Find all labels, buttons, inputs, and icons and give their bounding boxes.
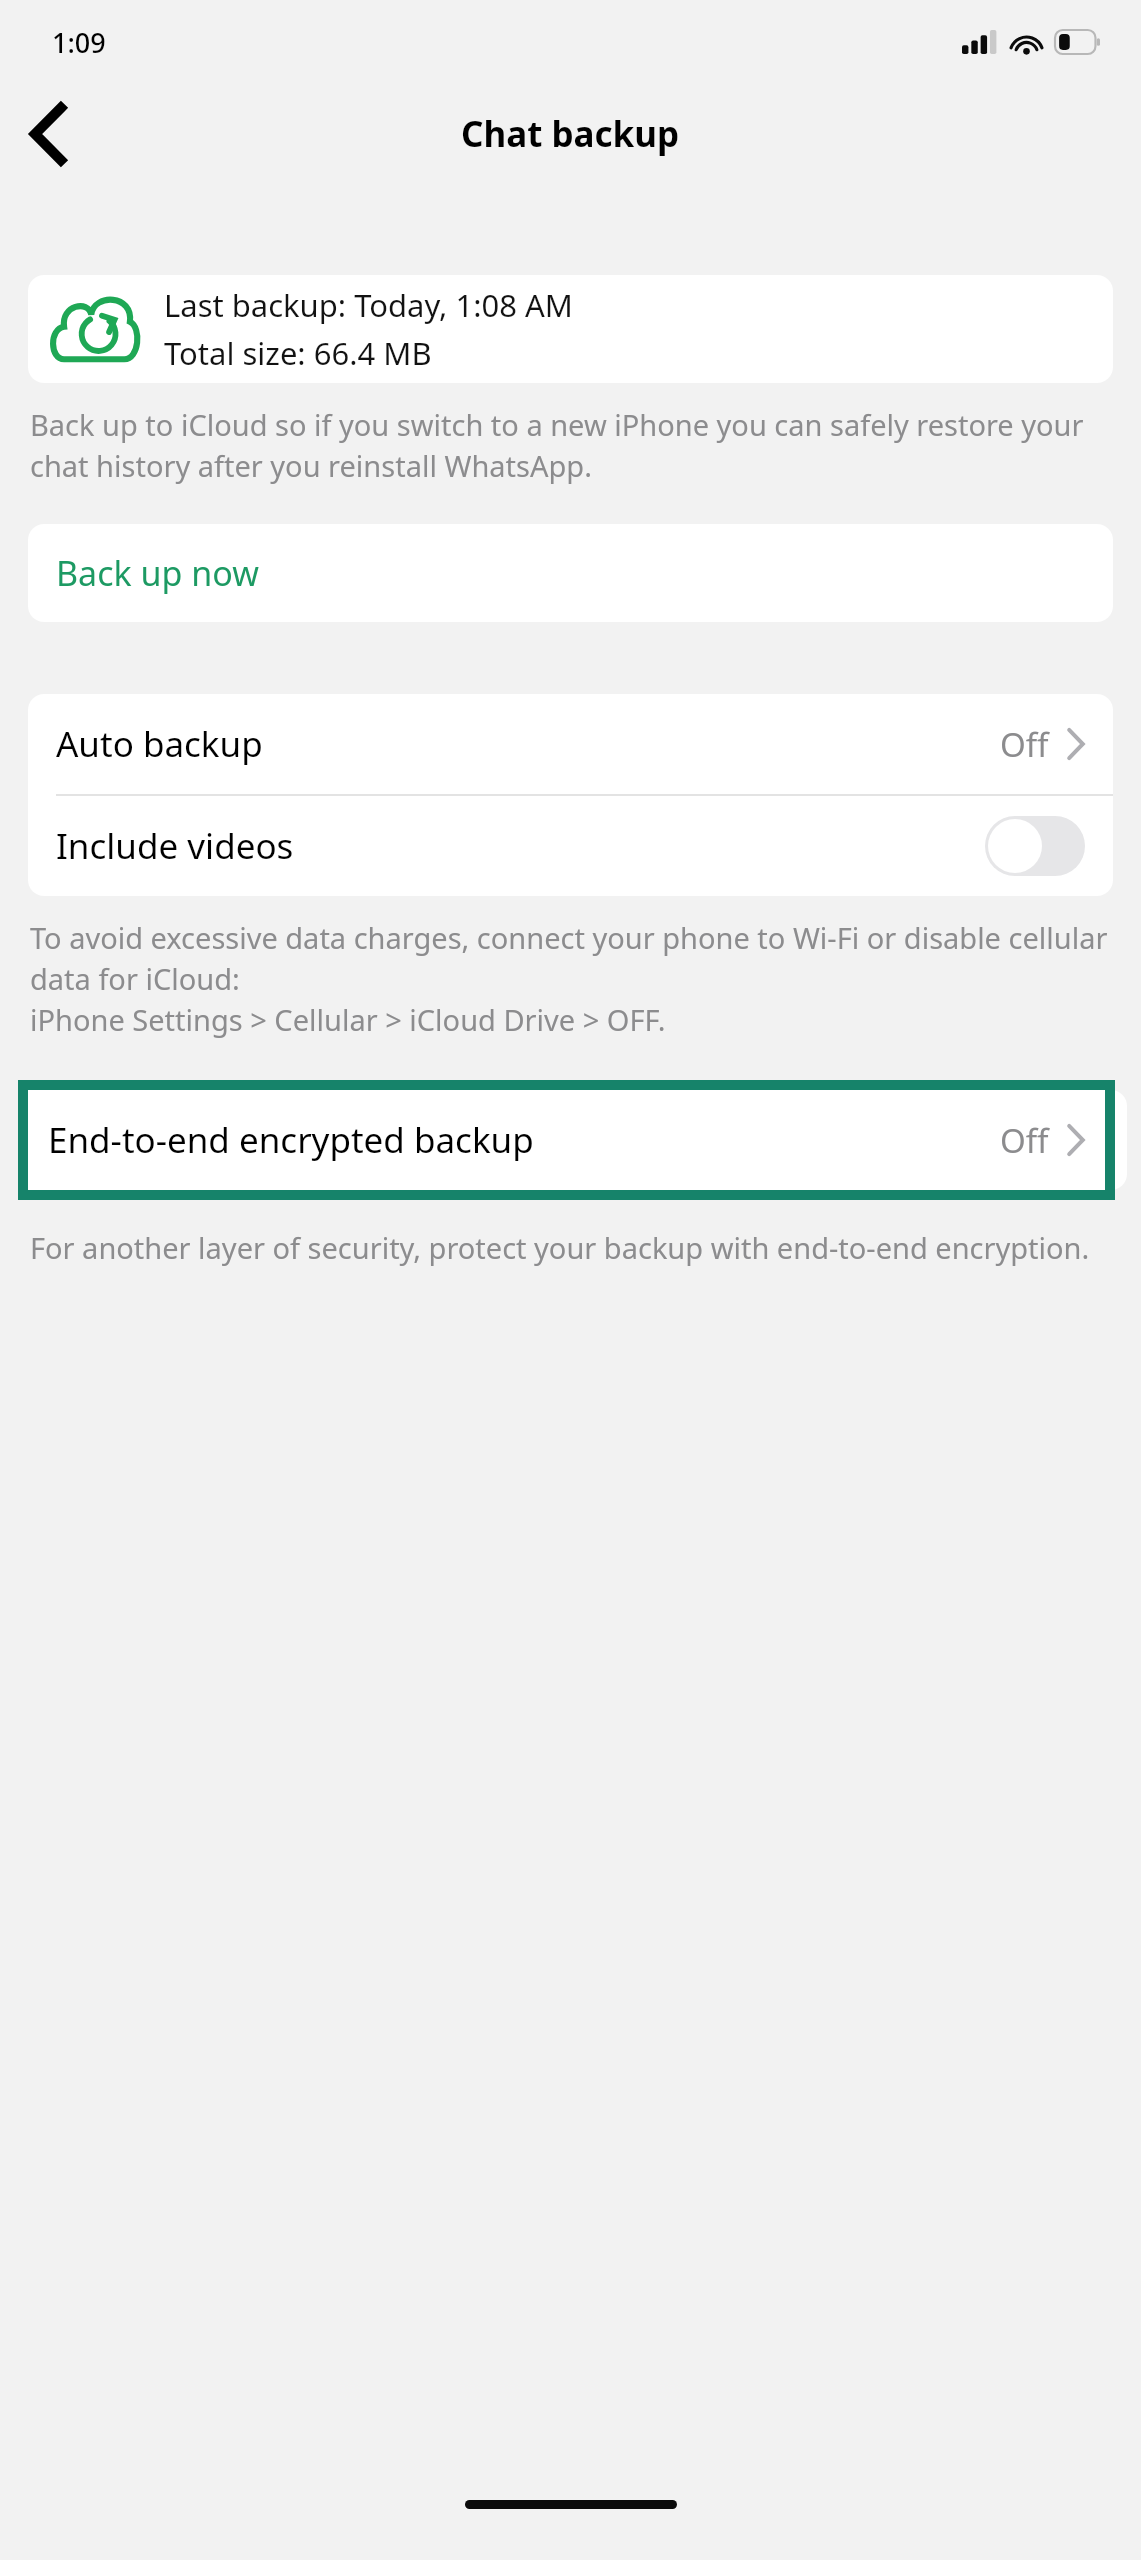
staticText: Auto backup: [56, 720, 263, 768]
staticText: For another layer of security, protect y…: [30, 1228, 1090, 1267]
button[interactable]: End-to-end encrypted backup: [28, 1090, 1105, 1190]
staticText: 1:09: [52, 24, 106, 61]
button[interactable]: Include videos toggle: [985, 816, 1085, 876]
staticText: Chat backup: [461, 110, 680, 158]
staticText: Total size: 66.4 MB: [164, 332, 432, 374]
staticText: Off: [1000, 722, 1049, 767]
staticText: End-to-end encrypted backup: [48, 1116, 534, 1164]
staticText: Off: [1000, 1118, 1049, 1163]
button[interactable]: Back up now: [28, 524, 1113, 622]
staticText: Back up to iCloud so if you switch to a …: [30, 405, 1111, 486]
button[interactable]: Back: [0, 86, 96, 182]
staticText: Include videos: [56, 822, 294, 870]
button[interactable]: Auto backup: [28, 694, 1113, 794]
button[interactable]: Include videos: [28, 796, 1113, 896]
button[interactable]: Last backup: Today, 1:08 AM: [28, 275, 1113, 383]
staticText: Back up now: [56, 550, 259, 596]
staticText: Last backup: Today, 1:08 AM: [164, 284, 573, 326]
staticText: To avoid excessive data charges, connect…: [30, 918, 1111, 1040]
